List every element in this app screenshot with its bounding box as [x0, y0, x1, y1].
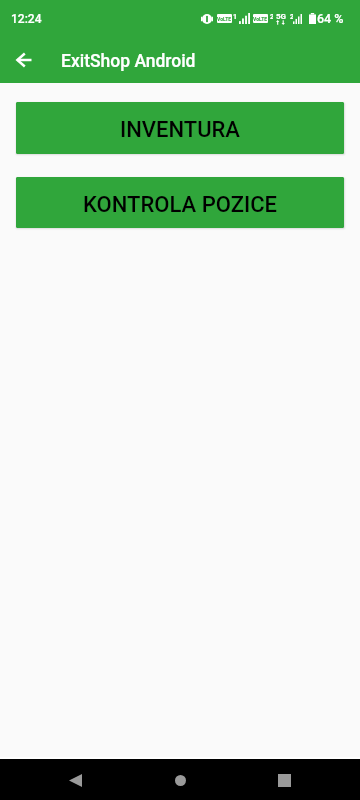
button[interactable]: Back — [4, 40, 44, 80]
staticText: KONTROLA POZICE — [83, 192, 277, 218]
staticText: 2 — [290, 13, 293, 21]
staticText: 2 — [270, 13, 273, 21]
button[interactable]: KONTROLA POZICE — [16, 177, 344, 228]
staticText: INVENTURA — [120, 117, 240, 143]
button[interactable]: Recent apps — [264, 760, 304, 800]
button[interactable]: INVENTURA — [16, 102, 344, 154]
staticText: ExitShop Android — [61, 51, 196, 72]
staticText: 5G — [276, 12, 286, 21]
staticText: VoLTE — [253, 16, 268, 22]
staticText: 12:24 — [11, 12, 42, 26]
button[interactable]: Back — [55, 760, 95, 800]
staticText: 1 — [233, 13, 236, 21]
button[interactable]: Home — [160, 760, 200, 800]
staticText: VoLTE — [217, 16, 232, 22]
staticText: 64 % — [317, 11, 344, 26]
